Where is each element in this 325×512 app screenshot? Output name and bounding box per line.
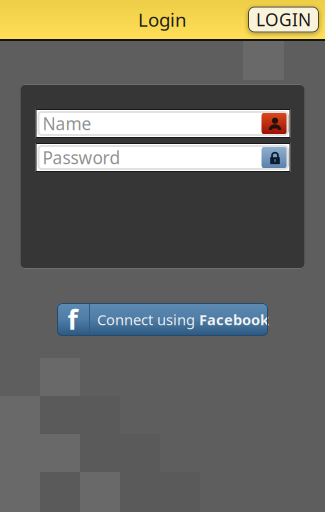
button[interactable]: f [57,303,268,336]
button[interactable]: LOGIN [248,6,319,32]
staticText: f [67,302,77,337]
button[interactable]: Password field [261,146,290,169]
staticText: Connect using Facebook [97,310,269,329]
staticText: Password [42,146,120,169]
button[interactable]: Name field [261,112,290,135]
staticText: LOGIN [256,8,311,31]
staticText: Login [138,7,187,32]
staticText: Name [42,112,91,135]
